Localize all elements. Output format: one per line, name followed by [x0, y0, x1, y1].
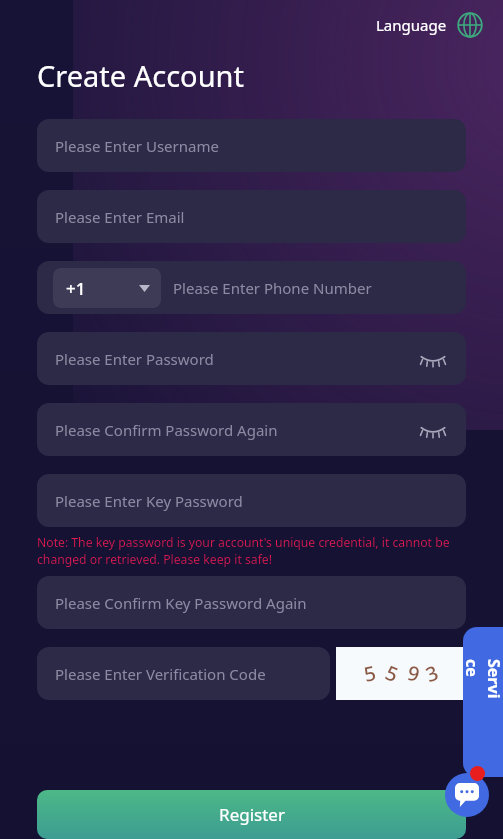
staticText: 5 — [381, 659, 403, 688]
button[interactable]: Language — [370, 6, 489, 44]
button[interactable]: Please Enter Verification Code — [37, 647, 330, 700]
staticText: Please Enter Password — [55, 349, 416, 369]
button[interactable]: Please Confirm Password Again — [37, 403, 466, 456]
staticText: Service — [463, 659, 503, 699]
button[interactable]: Please Confirm Key Password Again — [37, 576, 466, 629]
button[interactable]: Register — [37, 790, 466, 839]
staticText: Please Enter Verification Code — [55, 664, 266, 684]
button[interactable]: Service — [463, 627, 503, 777]
staticText: Please Confirm Key Password Again — [55, 593, 466, 613]
button[interactable]: Please Enter Phone Number — [173, 261, 466, 314]
staticText: Register — [219, 803, 285, 826]
button[interactable]: Show password — [416, 413, 450, 447]
staticText: Please Confirm Password Again — [55, 420, 416, 440]
button[interactable]: +1 — [53, 268, 161, 308]
staticText: Please Enter Key Password — [55, 491, 466, 511]
staticText: Note: The key password is your account's… — [37, 534, 466, 568]
button[interactable]: Refresh captcha — [336, 647, 466, 700]
button[interactable]: Please Enter Username — [37, 119, 466, 172]
button[interactable]: Please Enter Password — [37, 332, 466, 385]
staticText: 5 — [361, 659, 379, 688]
button[interactable]: Please Enter Email — [37, 190, 466, 243]
staticText: +1 — [66, 277, 86, 300]
button[interactable]: Show password — [416, 342, 450, 376]
staticText: Language — [376, 15, 447, 35]
staticText: 9 — [405, 659, 423, 688]
staticText: Please Enter Email — [55, 207, 466, 227]
staticText: Create Account — [37, 56, 244, 95]
button[interactable]: Customer service chat — [445, 773, 489, 817]
staticText: 3 — [422, 659, 442, 688]
staticText: Please Enter Username — [55, 136, 466, 156]
button[interactable]: Please Enter Key Password — [37, 474, 466, 527]
staticText: Please Enter Phone Number — [173, 278, 372, 298]
